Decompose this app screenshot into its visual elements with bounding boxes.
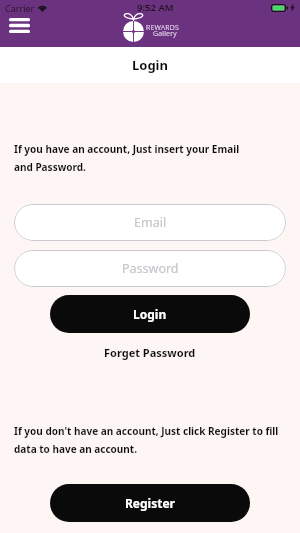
button[interactable]: Rewards Gallery home [121, 12, 181, 43]
button[interactable]: Forget Password [94, 341, 206, 364]
staticText: Carrier [5, 2, 35, 14]
staticText: Password [122, 260, 179, 277]
staticText: Register [125, 495, 175, 511]
button[interactable]: Email [14, 204, 286, 241]
staticText: Forget Password [104, 345, 196, 360]
button[interactable]: Open navigation menu [0, 8, 40, 43]
staticText: Login [133, 306, 167, 322]
button[interactable]: Password [14, 250, 286, 287]
button[interactable]: Register [50, 484, 250, 522]
staticText: If you have an account, Just insert your… [14, 142, 240, 174]
staticText: 9:52 AM [137, 1, 174, 14]
staticText: Email [134, 214, 167, 231]
staticText: Gallery [153, 29, 177, 39]
button[interactable]: Login [50, 295, 250, 333]
staticText: REWARDS [146, 23, 180, 33]
staticText: If you don't have an account, Just click… [14, 424, 279, 456]
staticText: Login [132, 56, 168, 74]
